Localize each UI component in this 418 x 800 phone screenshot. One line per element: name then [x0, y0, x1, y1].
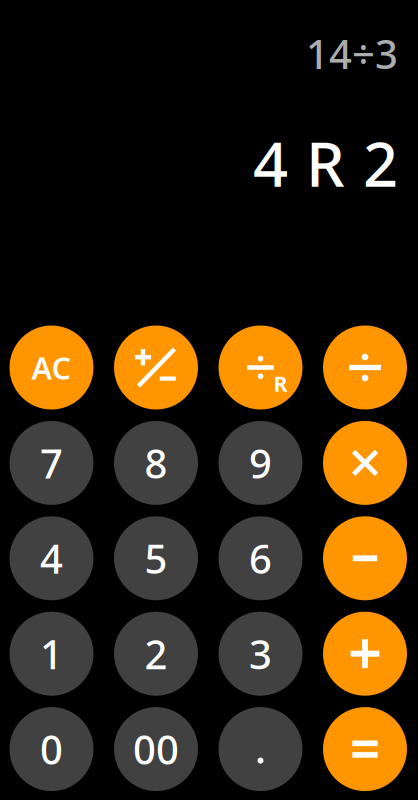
button[interactable]: Divide — [323, 325, 407, 409]
staticText: R — [306, 122, 345, 203]
staticText: 00 — [133, 722, 179, 776]
staticText: AC — [31, 347, 71, 388]
staticText: 4 — [253, 122, 288, 203]
button[interactable]: 9 — [218, 421, 302, 505]
button[interactable]: 4 — [9, 516, 93, 600]
button[interactable]: 00 — [114, 707, 198, 791]
button[interactable]: 7 — [9, 421, 93, 505]
button[interactable]: 6 — [218, 516, 302, 600]
staticText: 3 — [249, 627, 272, 680]
staticText: R — [273, 369, 287, 398]
staticText: 1 — [40, 627, 63, 680]
staticText: 0 — [40, 722, 63, 776]
button[interactable]: Plus minus — [114, 325, 198, 409]
button[interactable]: 1 — [9, 612, 93, 696]
button[interactable]: 5 — [114, 516, 198, 600]
button[interactable]: Equals — [323, 707, 407, 791]
button[interactable]: Minus — [323, 516, 407, 600]
button[interactable]: Multiply — [323, 421, 407, 505]
button[interactable]: Plus — [323, 612, 407, 696]
staticText: 14÷3 — [306, 27, 398, 80]
button[interactable]: Divide with remainder — [218, 325, 302, 409]
staticText: 4 — [40, 532, 63, 585]
button[interactable]: 3 — [218, 612, 302, 696]
staticText: 7 — [40, 436, 63, 489]
button[interactable]: Decimal point — [218, 707, 302, 791]
staticText: 2 — [363, 122, 398, 203]
button[interactable]: 8 — [114, 421, 198, 505]
button[interactable]: 0 — [9, 707, 93, 791]
staticText: 2 — [144, 627, 167, 680]
staticText: 5 — [144, 532, 167, 585]
staticText: 9 — [249, 436, 272, 489]
button[interactable]: 2 — [114, 612, 198, 696]
button[interactable]: All clear — [9, 325, 93, 409]
staticText: 8 — [144, 436, 167, 489]
staticText: 6 — [249, 532, 272, 585]
